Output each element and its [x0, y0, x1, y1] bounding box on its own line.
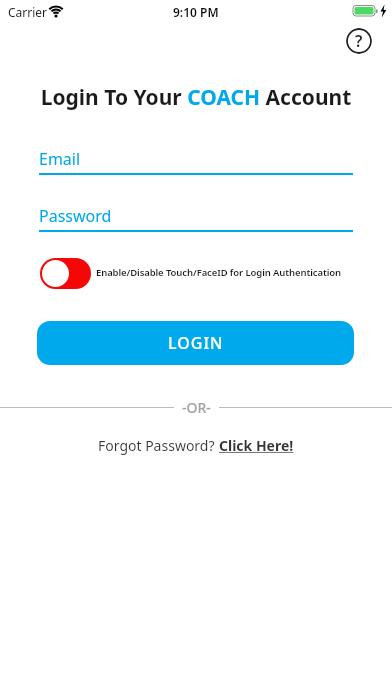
- staticText: Password: [39, 205, 112, 227]
- staticText: Carrier: [8, 4, 48, 20]
- staticText: Email: [39, 148, 81, 170]
- staticText: -OR-: [182, 398, 211, 417]
- staticText: LOGIN: [168, 332, 224, 354]
- staticText: 9:10 PM: [173, 4, 219, 20]
- staticText: ?: [355, 30, 363, 52]
- button[interactable]: ?: [346, 28, 372, 54]
- button[interactable]: LOGIN: [37, 321, 354, 365]
- staticText: Login To Your COACH Account: [0, 83, 392, 112]
- button[interactable]: [40, 258, 91, 289]
- button[interactable]: Click Here!: [219, 436, 294, 455]
- staticText: Enable/Disable Touch/FaceID for Login Au…: [96, 266, 341, 279]
- staticText: Forgot Password?: [98, 436, 219, 455]
